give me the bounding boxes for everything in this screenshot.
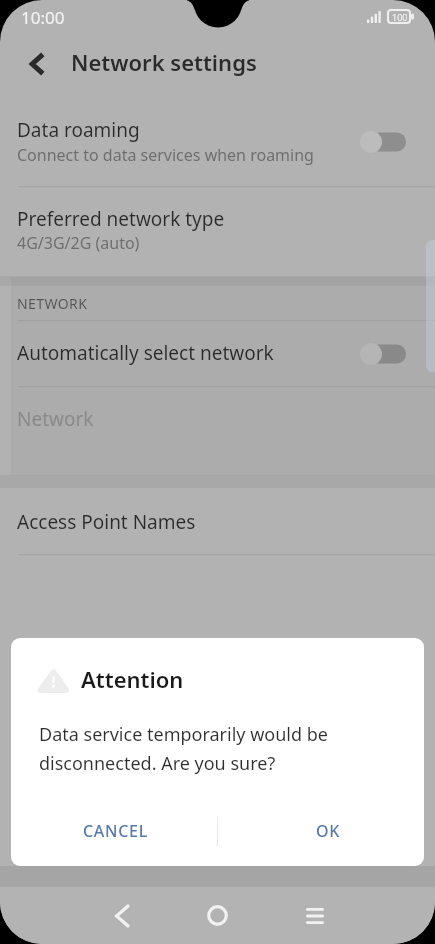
staticText: Connect to data services when roaming xyxy=(17,144,314,166)
staticText: Automatically select network xyxy=(17,340,274,366)
button[interactable]: OK xyxy=(218,802,424,860)
button[interactable]: Back xyxy=(14,40,62,88)
staticText: Attention xyxy=(81,664,184,694)
staticText: NETWORK xyxy=(17,294,88,313)
staticText: Data service temporarily would be discon… xyxy=(39,722,328,775)
staticText: OK xyxy=(316,820,341,842)
staticText: 4G/3G/2G (auto) xyxy=(17,232,140,254)
button[interactable]: Toggle xyxy=(360,131,406,153)
button[interactable]: CANCEL xyxy=(11,802,217,860)
staticText: 10:00 xyxy=(21,6,65,29)
button[interactable]: Recents xyxy=(285,887,345,944)
staticText: Network settings xyxy=(71,47,257,77)
button[interactable]: Back xyxy=(91,887,151,944)
staticText: Data roaming xyxy=(17,117,140,143)
staticText: Network xyxy=(17,406,94,432)
staticText: 100 xyxy=(392,11,408,23)
button[interactable]: Home xyxy=(187,887,247,944)
staticText: Access Point Names xyxy=(17,509,196,535)
staticText: Preferred network type xyxy=(17,206,225,232)
staticText: CANCEL xyxy=(83,820,148,842)
button[interactable]: Toggle xyxy=(360,343,406,365)
